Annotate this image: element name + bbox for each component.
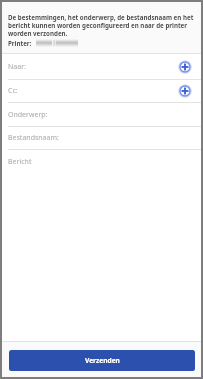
staticText: Printer: xyxy=(8,39,32,47)
button[interactable]: Voeg ontvanger toe Naar: xyxy=(178,60,192,74)
button[interactable]: Onderwerp: xyxy=(2,103,201,126)
button[interactable]: Cc: xyxy=(2,80,201,102)
button[interactable]: Voeg ontvanger toe Cc: xyxy=(178,84,192,98)
staticText: Verzenden xyxy=(85,356,120,365)
staticText: De bestemmingen, het onderwerp, de besta… xyxy=(8,13,195,37)
staticText: Cc: xyxy=(8,86,18,96)
staticText: Onderwerp: xyxy=(8,110,48,120)
staticText: Bericht xyxy=(8,157,32,167)
staticText: Bestandsnaam: xyxy=(8,133,59,143)
button[interactable]: Naar: xyxy=(2,54,201,79)
staticText: Naar: xyxy=(8,62,26,72)
button[interactable]: Bestandsnaam: xyxy=(2,127,201,149)
button[interactable]: Verzenden xyxy=(9,350,195,371)
